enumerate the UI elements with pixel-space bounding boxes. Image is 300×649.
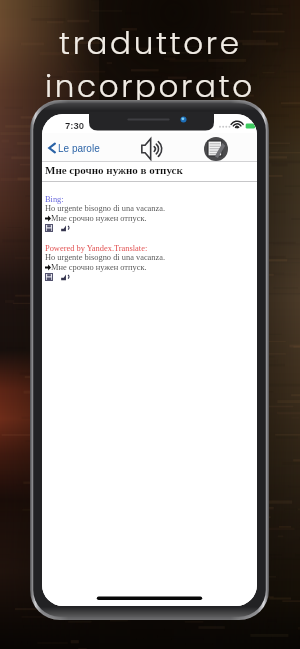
button[interactable]: Le parole xyxy=(48,134,110,162)
staticText: Мне срочно нужен отпуск. xyxy=(51,214,147,223)
staticText: Ho urgente bisogno di una vacanza. xyxy=(45,204,166,213)
button[interactable]: Read aloud xyxy=(136,133,174,162)
button[interactable]: Listen to translation xyxy=(61,273,69,281)
button[interactable]: Save translation xyxy=(45,224,53,232)
staticText: Мне срочно нужен отпуск. xyxy=(51,263,147,272)
button[interactable]: Listen to translation xyxy=(61,224,69,232)
button[interactable]: Save translation xyxy=(45,273,53,281)
staticText: Le parole xyxy=(58,143,100,154)
staticText: traduttore xyxy=(59,21,242,64)
staticText: incorporato xyxy=(45,64,255,107)
staticText: Bing: xyxy=(45,195,64,204)
staticText: Powered by Yandex.Translate: xyxy=(45,244,148,253)
staticText: Мне срочно нужно в отпуск xyxy=(45,164,183,176)
staticText: Ho urgente bisogno di una vacanza. xyxy=(45,253,166,262)
button[interactable]: Notes xyxy=(200,133,231,162)
staticText: 7:30 xyxy=(65,120,85,131)
